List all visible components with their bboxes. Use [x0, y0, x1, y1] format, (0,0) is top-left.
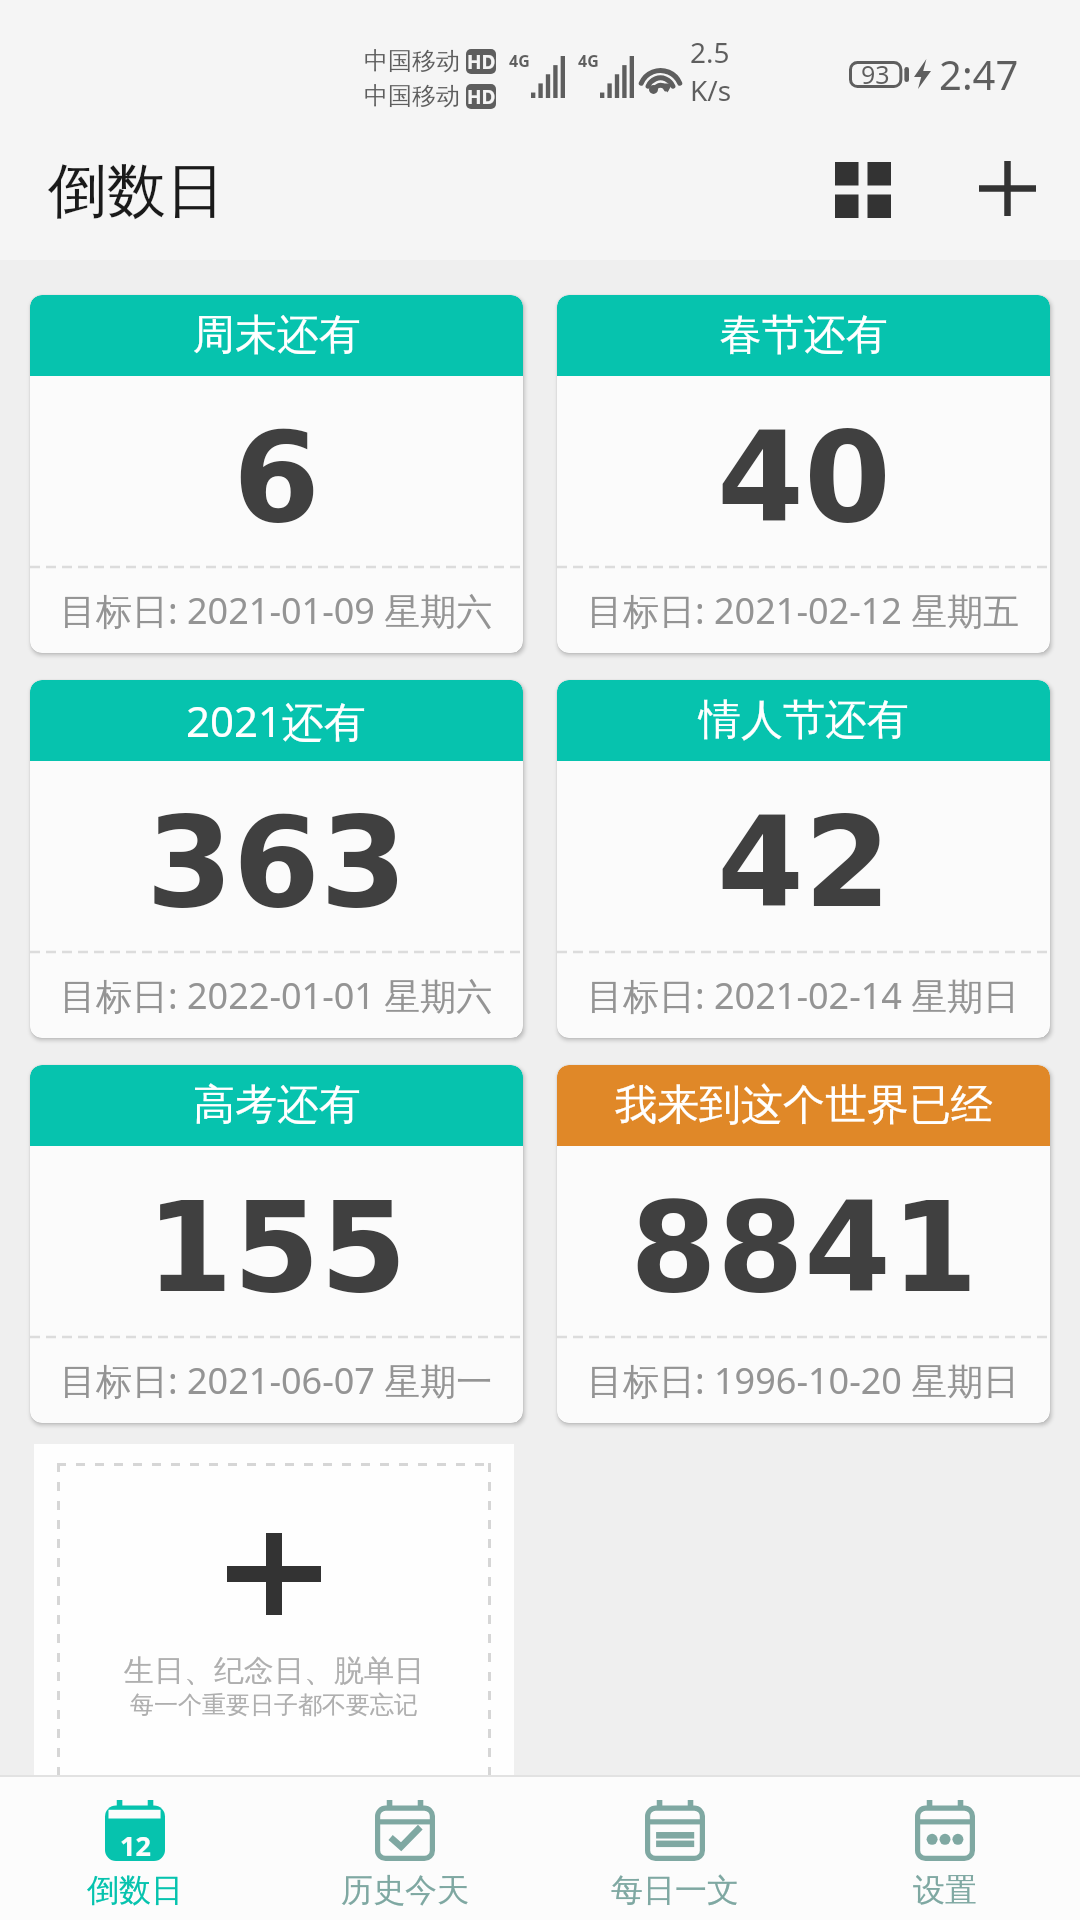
staticText: 历史今天	[341, 1870, 469, 1910]
staticText: HD	[467, 49, 496, 74]
staticText: 40	[717, 405, 891, 551]
staticText: 363	[146, 790, 407, 936]
button[interactable]: 春节还有	[557, 295, 1050, 653]
staticText: 155	[146, 1175, 407, 1321]
staticText: 生日、纪念日、脱单日	[124, 1652, 424, 1690]
staticText: 中国移动	[364, 81, 460, 111]
staticText: 目标日: 2021-01-09 星期六	[60, 586, 493, 635]
staticText: 2:47	[939, 47, 1019, 101]
staticText: 6	[233, 405, 320, 551]
staticText: 42	[717, 790, 891, 936]
button[interactable]: 每日一文	[540, 1777, 810, 1920]
staticText: 2.5	[690, 33, 730, 71]
staticText: 我来到这个世界已经	[615, 1079, 993, 1132]
staticText: HD	[467, 84, 496, 109]
staticText: 目标日: 2021-02-12 星期五	[587, 586, 1020, 635]
button[interactable]: 历史今天	[270, 1777, 540, 1920]
staticText: 倒数日	[87, 1870, 183, 1910]
staticText: 设置	[913, 1870, 977, 1910]
staticText: 目标日: 2021-06-07 星期一	[60, 1356, 493, 1405]
staticText: 中国移动	[364, 46, 460, 76]
button[interactable]: 2021还有	[30, 680, 523, 1038]
staticText: 每一个重要日子都不要忘记	[130, 1690, 418, 1720]
staticText: 春节还有	[720, 309, 888, 362]
button[interactable]: 周末还有	[30, 295, 523, 653]
button[interactable]: 情人节还有	[557, 680, 1050, 1038]
staticText: 目标日: 2022-01-01 星期六	[60, 971, 493, 1020]
staticText: 8841	[630, 1175, 978, 1321]
button[interactable]: Grid view	[791, 135, 935, 255]
staticText: 93	[861, 57, 890, 91]
staticText: K/s	[690, 71, 732, 109]
button[interactable]: 高考还有	[30, 1065, 523, 1423]
staticText: 2021还有	[186, 692, 367, 749]
staticText: 每日一文	[611, 1870, 739, 1910]
staticText: 4G	[578, 50, 599, 72]
button[interactable]: 生日、纪念日、脱单日	[34, 1444, 514, 1844]
staticText: 周末还有	[193, 309, 361, 362]
button[interactable]: 我来到这个世界已经	[557, 1065, 1050, 1423]
staticText: 4G	[509, 50, 530, 72]
button[interactable]: 设置	[810, 1777, 1080, 1920]
button[interactable]: Add countdown	[935, 135, 1079, 255]
staticText: 情人节还有	[699, 694, 909, 747]
staticText: 高考还有	[193, 1079, 361, 1132]
staticText: 12	[120, 1827, 151, 1864]
button[interactable]: 12	[0, 1777, 270, 1920]
staticText: 倒数日	[48, 154, 225, 228]
staticText: 目标日: 2021-02-14 星期日	[587, 971, 1020, 1020]
staticText: 目标日: 1996-10-20 星期日	[587, 1356, 1020, 1405]
